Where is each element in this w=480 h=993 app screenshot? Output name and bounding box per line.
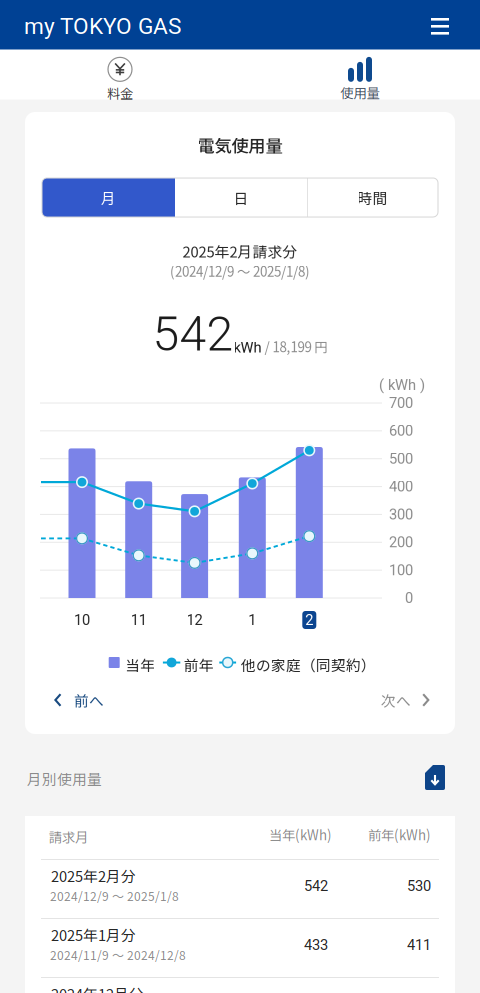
- button[interactable]: 月: [42, 178, 175, 217]
- staticText: 月別使用量: [27, 768, 102, 789]
- staticText: (2024/12/9 〜 2025/1/8): [170, 261, 310, 281]
- staticText: ( kWh ): [379, 376, 425, 394]
- staticText: 600: [389, 422, 413, 439]
- staticText: 2024/12/9 〜 2025/1/8: [50, 887, 179, 904]
- staticText: 300: [389, 506, 413, 523]
- staticText: 時間: [357, 187, 387, 208]
- button[interactable]: 前へ: [48, 684, 110, 716]
- staticText: 2025年2月分: [51, 865, 136, 886]
- staticText: 前へ: [74, 689, 104, 711]
- staticText: 2: [305, 611, 313, 629]
- button[interactable]: 2024年12月分: [25, 978, 455, 993]
- staticText: 次へ: [381, 689, 411, 711]
- button[interactable]: 使用量: [240, 49, 480, 104]
- staticText: 2025年1月分: [51, 924, 136, 945]
- staticText: 料金: [107, 83, 133, 103]
- staticText: my TOKYO GAS: [24, 13, 181, 40]
- staticText: 前年: [184, 654, 214, 675]
- staticText: 2025年2月請求分: [182, 240, 297, 262]
- button[interactable]: Download usage data: [425, 765, 445, 790]
- staticText: 10: [74, 611, 90, 629]
- staticText: 542: [304, 877, 328, 895]
- button[interactable]: 日: [175, 178, 307, 217]
- staticText: 2024/11/9 〜 2024/12/8: [50, 946, 186, 963]
- staticText: 100: [389, 561, 413, 579]
- staticText: 使用量: [340, 83, 379, 102]
- staticText: 200: [389, 534, 413, 551]
- staticText: 他の家庭（同契約）: [241, 654, 376, 675]
- staticText: 日: [233, 187, 248, 208]
- staticText: 411: [407, 936, 431, 954]
- button[interactable]: Menu: [421, 8, 459, 44]
- staticText: 11: [131, 611, 147, 629]
- staticText: 530: [407, 877, 431, 895]
- staticText: 請求月: [49, 827, 88, 846]
- staticText: 542: [152, 306, 233, 362]
- staticText: kWh: [233, 339, 261, 356]
- button[interactable]: 次へ: [375, 684, 436, 716]
- staticText: 2024年12月分: [51, 983, 144, 993]
- button[interactable]: 時間: [307, 178, 438, 217]
- staticText: / 18,199 円: [261, 337, 327, 356]
- staticText: 前年(kWh): [368, 825, 431, 844]
- staticText: 12: [187, 611, 203, 629]
- staticText: 1: [248, 611, 256, 629]
- staticText: 400: [389, 478, 413, 495]
- staticText: 電気使用量: [197, 132, 282, 158]
- staticText: 当年(kWh): [269, 825, 332, 844]
- staticText: 700: [389, 394, 413, 412]
- staticText: 月: [101, 187, 116, 208]
- button[interactable]: 料金: [0, 49, 240, 104]
- staticText: 433: [304, 936, 328, 954]
- button[interactable]: 2025年1月分: [25, 919, 455, 977]
- staticText: 当年: [125, 654, 155, 675]
- button[interactable]: 2025年2月分: [25, 860, 455, 918]
- staticText: 0: [405, 589, 413, 607]
- staticText: 500: [389, 450, 413, 467]
